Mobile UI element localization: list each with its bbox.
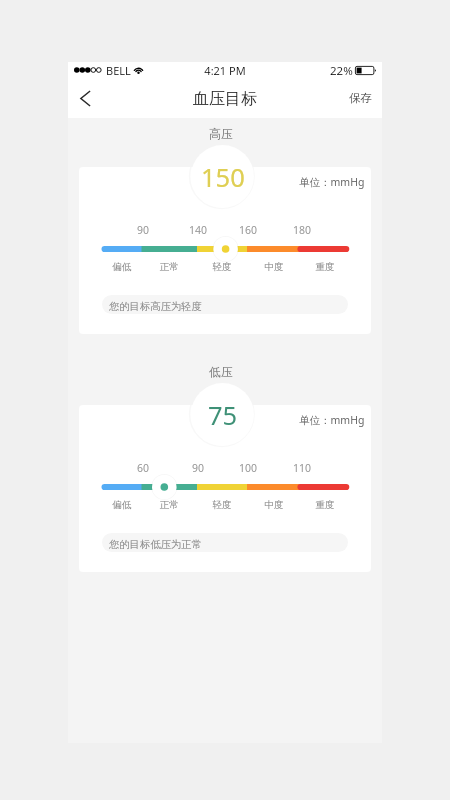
staticText: 22% bbox=[330, 63, 353, 79]
staticText: 150 bbox=[201, 160, 245, 195]
staticText: 高压 bbox=[64, 126, 378, 141]
staticText: 血压目标 bbox=[193, 89, 257, 109]
staticText: 重度 bbox=[310, 499, 340, 511]
staticText: 您的目标高压为轻度 bbox=[109, 300, 202, 313]
staticText: 60 bbox=[131, 461, 155, 475]
staticText: 100 bbox=[236, 461, 260, 475]
button[interactable]: Blood pressure level slider bbox=[79, 480, 371, 494]
button[interactable]: Blood pressure level slider bbox=[79, 242, 371, 256]
staticText: 4:21 PM bbox=[68, 63, 382, 78]
staticText: 正常 bbox=[154, 261, 184, 273]
staticText: 重度 bbox=[310, 261, 340, 273]
staticText: 90 bbox=[131, 223, 155, 237]
staticText: 单位：mmHg bbox=[299, 413, 365, 427]
button[interactable]: Back bbox=[70, 84, 100, 114]
staticText: 单位：mmHg bbox=[299, 175, 365, 189]
staticText: 偏低 bbox=[107, 499, 137, 511]
button[interactable]: 保存 bbox=[339, 83, 382, 115]
staticText: 您的目标低压为正常 bbox=[109, 538, 202, 551]
staticText: 180 bbox=[290, 223, 314, 237]
staticText: 轻度 bbox=[207, 499, 237, 511]
staticText: BELL bbox=[106, 63, 131, 78]
staticText: 轻度 bbox=[207, 261, 237, 273]
staticText: 中度 bbox=[259, 261, 289, 273]
staticText: 中度 bbox=[259, 499, 289, 511]
staticText: 75 bbox=[208, 398, 238, 433]
staticText: 低压 bbox=[64, 364, 378, 379]
staticText: 正常 bbox=[154, 499, 184, 511]
staticText: 保存 bbox=[349, 91, 372, 105]
staticText: 140 bbox=[186, 223, 210, 237]
staticText: 90 bbox=[186, 461, 210, 475]
staticText: 160 bbox=[236, 223, 260, 237]
staticText: 110 bbox=[290, 461, 314, 475]
staticText: 偏低 bbox=[107, 261, 137, 273]
